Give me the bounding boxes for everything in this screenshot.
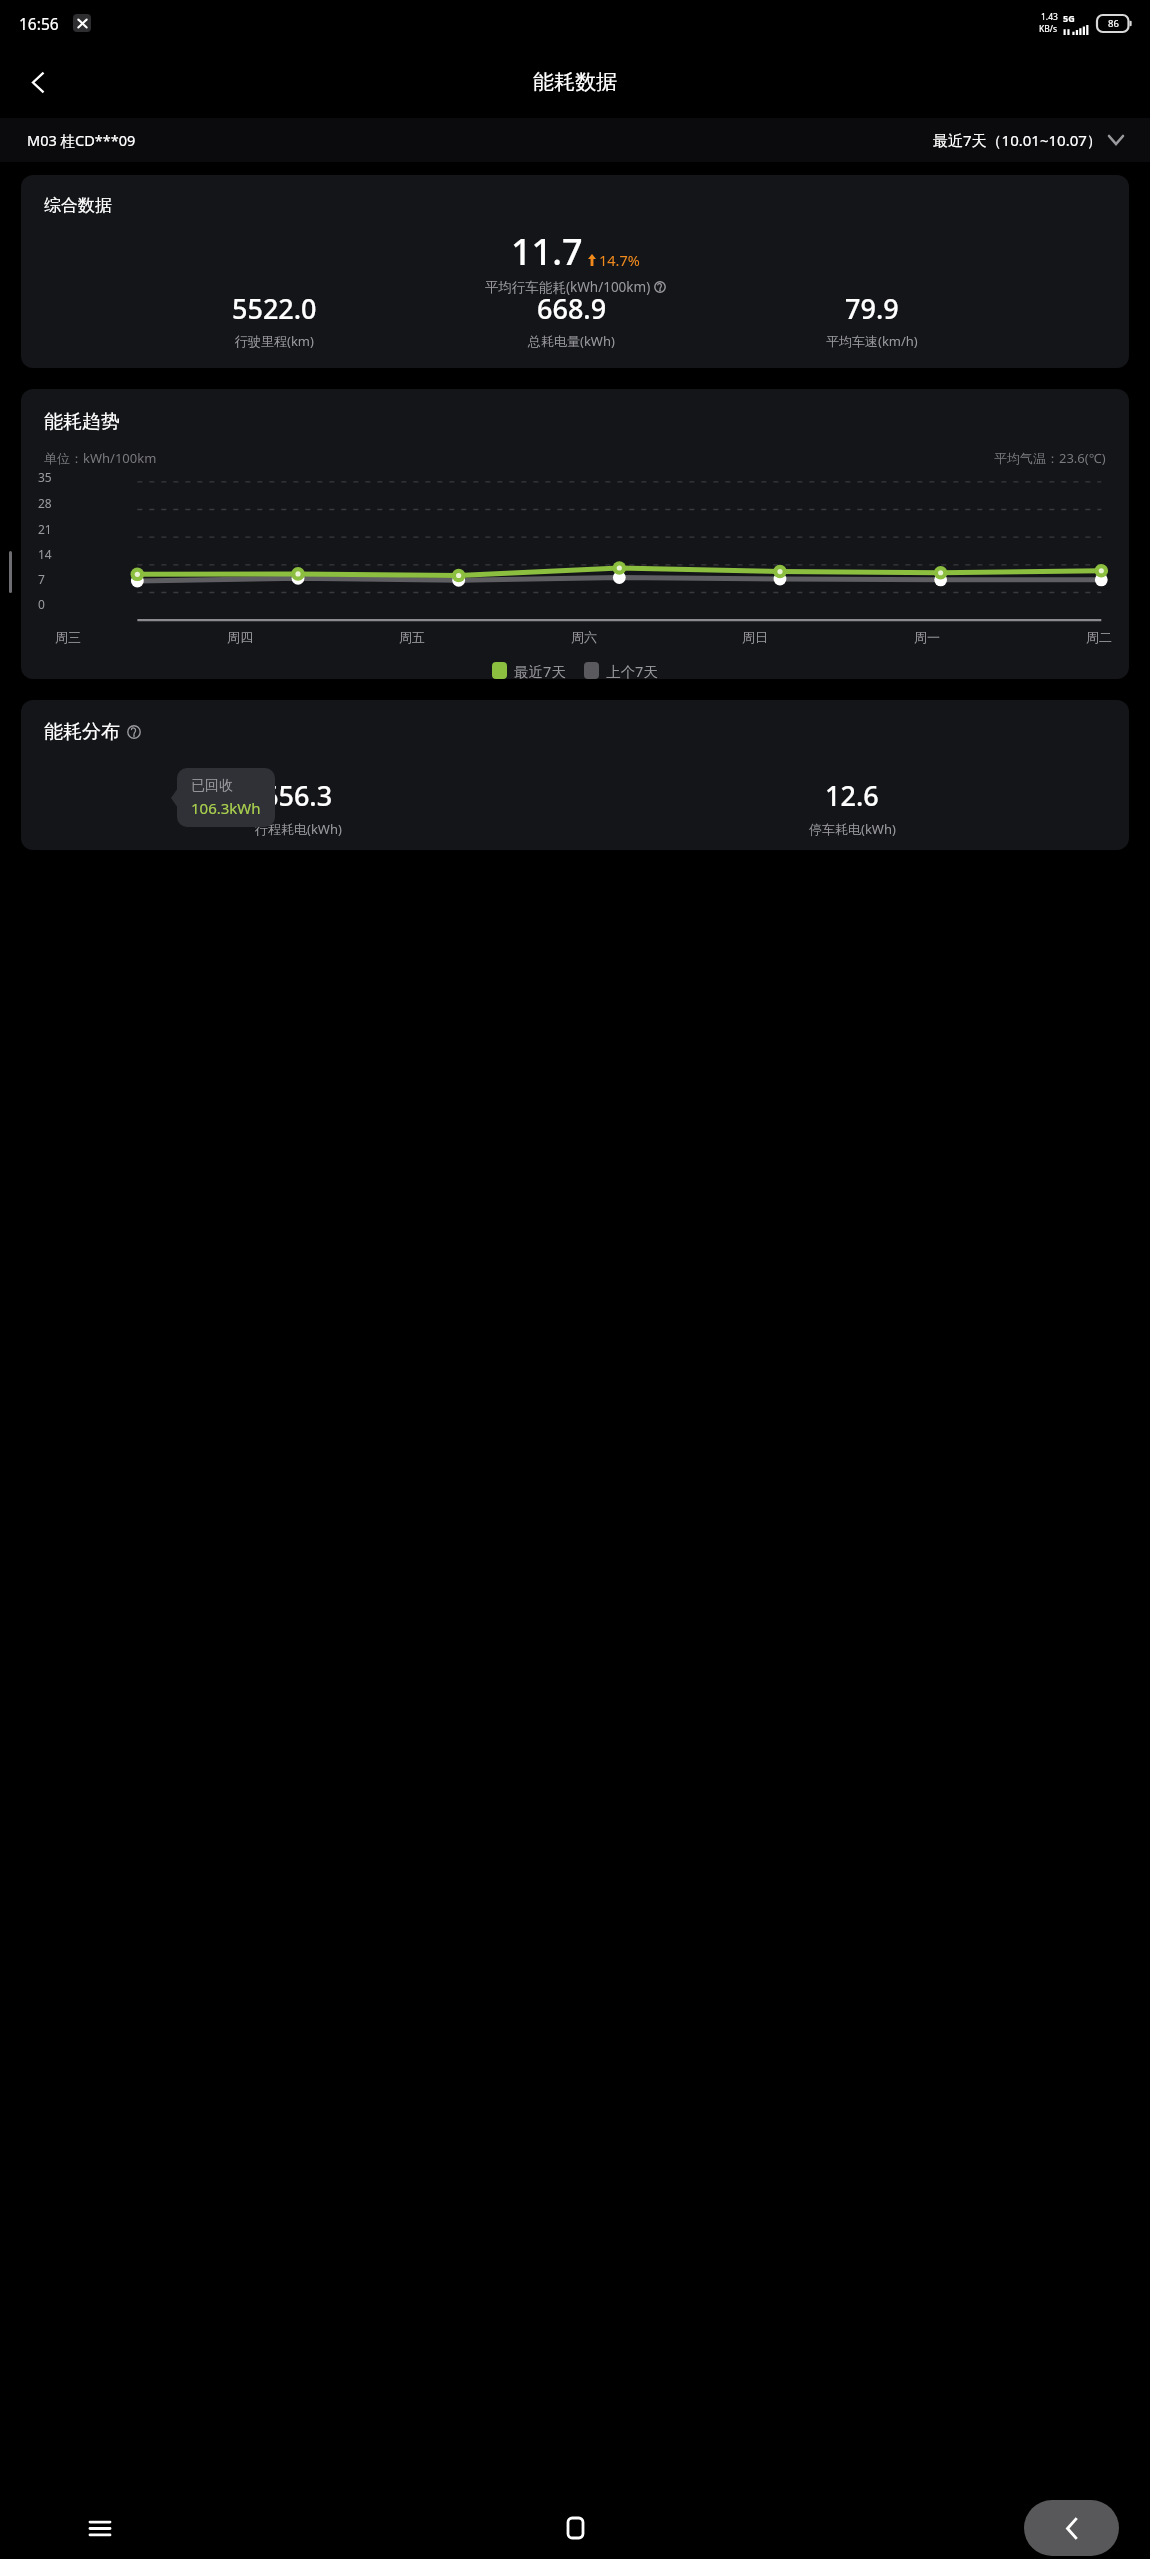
staticText: 7	[38, 571, 45, 587]
staticText: 11.7	[511, 227, 583, 276]
button[interactable]: M03 桂CD***09	[27, 130, 136, 150]
staticText: 最近7天（10.01~10.07）	[933, 130, 1102, 150]
staticText: 5522.0	[232, 290, 317, 327]
staticText: 平均车速(km/h)	[826, 332, 918, 350]
staticText: 14.7%	[599, 250, 640, 270]
button[interactable]: Back	[1024, 2500, 1119, 2556]
staticText: 656.3	[263, 777, 333, 814]
staticText: 1.43	[1041, 11, 1058, 23]
staticText: 周三	[55, 629, 81, 645]
staticText: 最近7天	[514, 661, 566, 679]
staticText: 86	[1108, 17, 1119, 30]
button[interactable]: Recent apps	[68, 2497, 132, 2559]
staticText: 12.6	[825, 777, 879, 814]
staticText: 停车耗电(kWh)	[809, 820, 896, 838]
staticText: 上个7天	[606, 661, 658, 679]
staticText: 668.9	[537, 290, 607, 327]
staticText: 行程耗电(kWh)	[255, 820, 342, 838]
staticText: 平均气温：23.6(℃)	[994, 449, 1106, 467]
staticText: 周四	[227, 629, 253, 645]
staticText: 能耗分布	[44, 720, 120, 744]
staticText: 综合数据	[44, 195, 112, 216]
staticText: 周二	[1086, 629, 1112, 645]
staticText: 106.3kWh	[191, 798, 261, 818]
staticText: 0	[38, 596, 45, 612]
staticText: 单位：kWh/100km	[44, 449, 157, 467]
staticText: 周日	[742, 629, 768, 645]
staticText: 周六	[571, 629, 597, 645]
button[interactable]: Home	[543, 2497, 607, 2559]
staticText: 能耗趋势	[44, 410, 120, 434]
staticText: KB/s	[1039, 23, 1058, 35]
staticText: 28	[38, 495, 52, 511]
staticText: 能耗数据	[533, 69, 617, 95]
staticText: 14	[38, 546, 52, 562]
button[interactable]: 上个7天	[584, 661, 658, 679]
staticText: 79.9	[845, 290, 899, 327]
staticText: 平均行车能耗(kWh/100km)	[485, 278, 651, 296]
staticText: 行驶里程(km)	[235, 332, 314, 350]
button[interactable]: 最近7天（10.01~10.07）	[933, 130, 1123, 150]
staticText: 16:56	[19, 13, 59, 34]
staticText: 总耗电量(kWh)	[528, 332, 615, 350]
staticText: 35	[38, 469, 52, 485]
staticText: 周五	[399, 629, 425, 645]
staticText: 21	[38, 521, 52, 537]
button[interactable]: Back	[14, 58, 62, 106]
button[interactable]: 最近7天	[492, 661, 566, 679]
staticText: 周一	[914, 629, 940, 645]
staticText: 已回收	[191, 777, 233, 795]
staticText: 5G	[1063, 12, 1075, 24]
